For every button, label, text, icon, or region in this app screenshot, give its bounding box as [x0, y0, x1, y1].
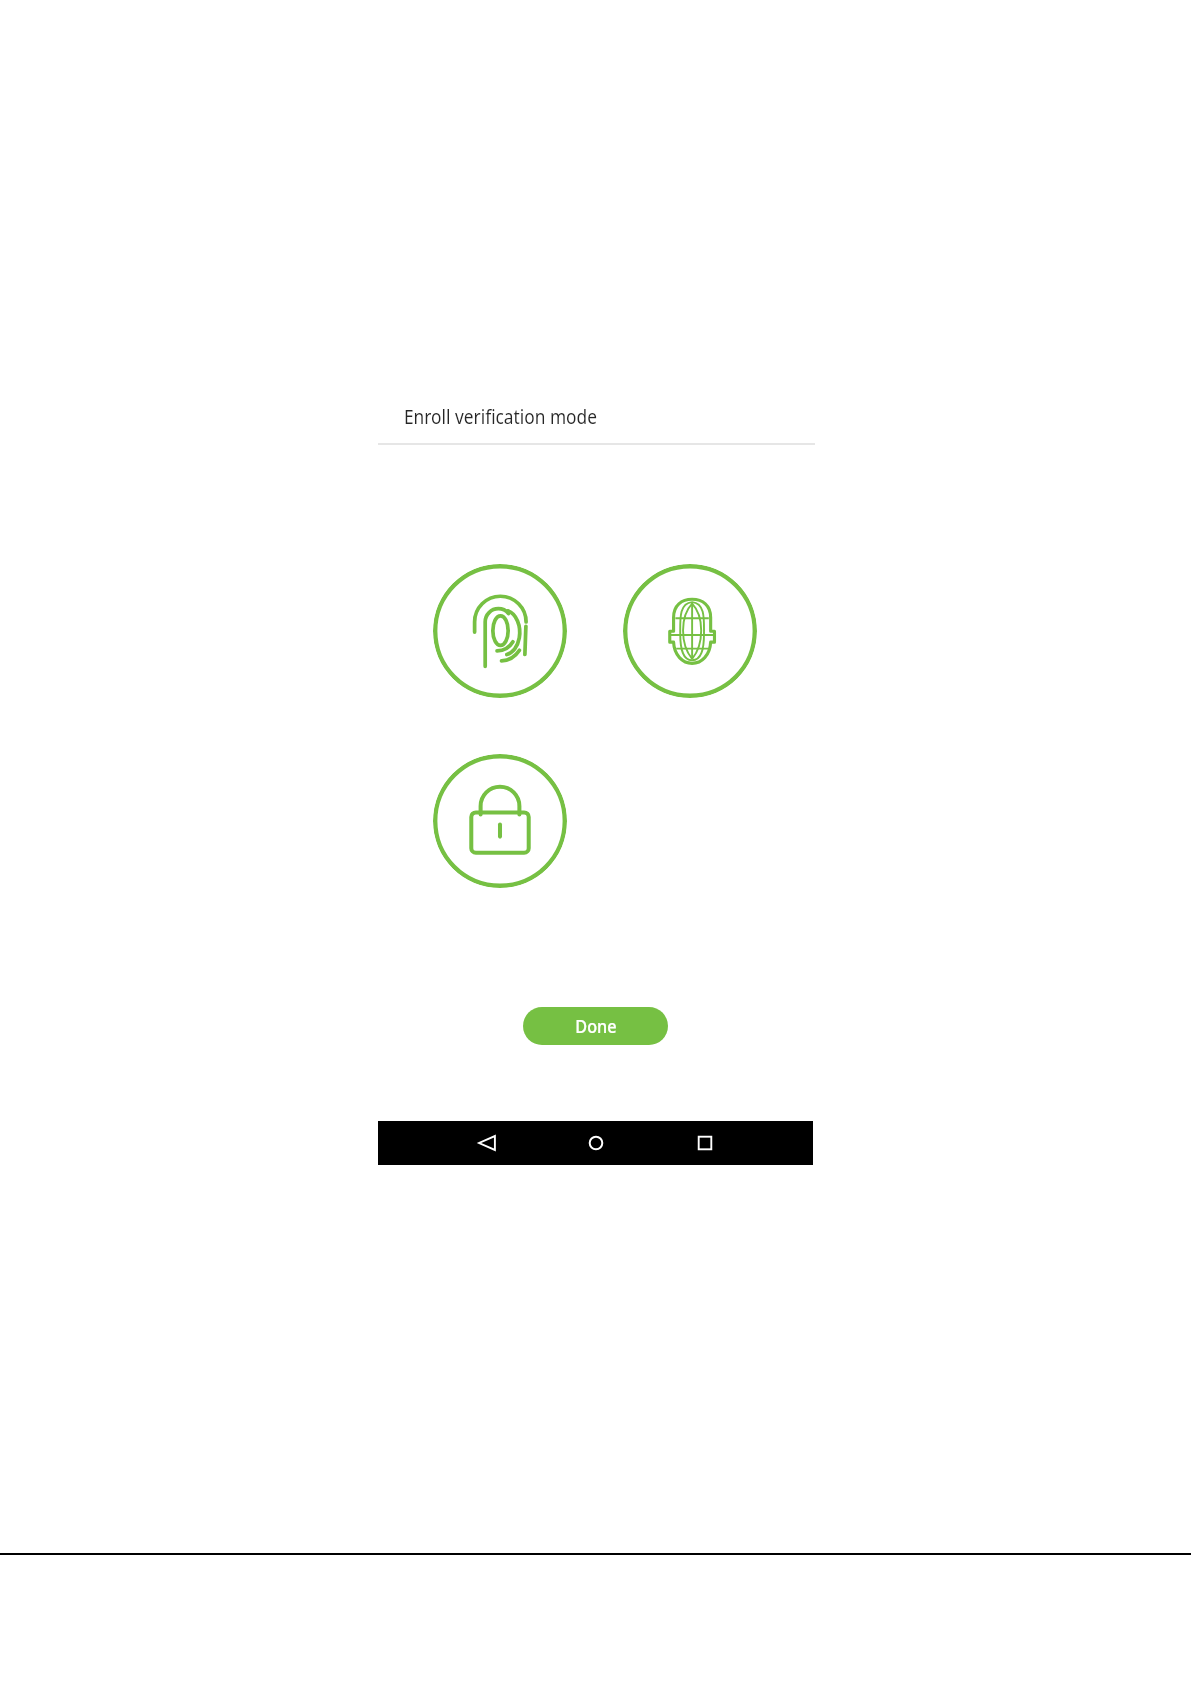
- button[interactable]: Face: [623, 564, 757, 698]
- button[interactable]: Password: [433, 754, 567, 888]
- staticText: Enroll verification mode: [404, 403, 598, 430]
- button[interactable]: Fingerprint: [433, 564, 567, 698]
- button[interactable]: Home: [541, 1121, 650, 1165]
- button[interactable]: Done: [523, 1007, 668, 1045]
- button[interactable]: Recents: [650, 1121, 759, 1165]
- button[interactable]: Back: [432, 1121, 541, 1165]
- staticText: Done: [575, 1014, 617, 1039]
